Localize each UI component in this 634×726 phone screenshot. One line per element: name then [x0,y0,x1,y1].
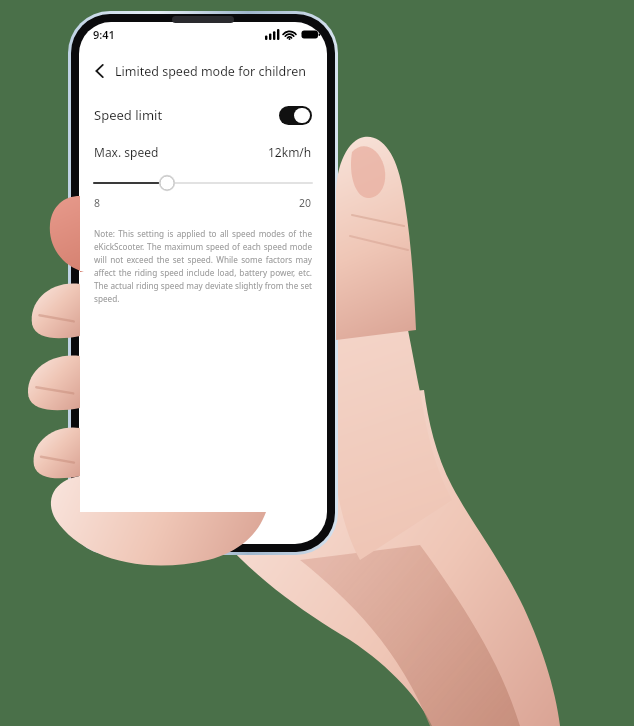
button[interactable]: Back [85,56,115,86]
staticText: 12km/h [268,144,312,160]
staticText: Max. speed [94,144,159,160]
staticText: 8 [94,196,101,210]
staticText: 9:41 [93,27,115,42]
button[interactable]: Max speed slider [79,174,327,192]
button[interactable]: Speed limit [79,98,327,132]
staticText: Limited speed mode for children [115,63,306,80]
staticText: 20 [299,196,312,210]
staticText: Note: This setting is applied to all spe… [94,228,312,305]
button[interactable]: Speed limit toggle, on [279,106,312,125]
staticText: Speed limit [94,106,163,124]
